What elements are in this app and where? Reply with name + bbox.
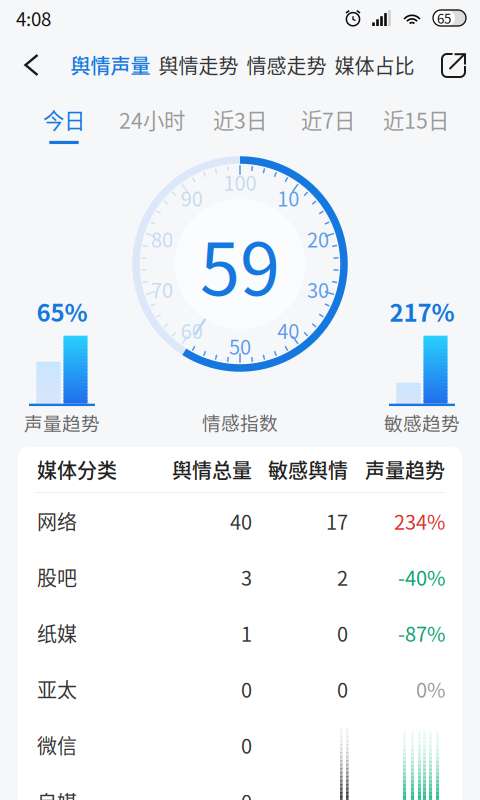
staticText: 30: [307, 275, 329, 304]
staticText: 0: [241, 730, 252, 759]
staticText: -40%: [398, 562, 445, 591]
staticText: 217%: [389, 294, 454, 329]
staticText: 股吧: [37, 562, 77, 591]
staticText: 亚太: [37, 674, 77, 703]
staticText: 50: [229, 331, 251, 360]
button[interactable]: 媒体占比: [334, 40, 414, 90]
staticText: 纸媒: [37, 618, 77, 647]
staticText: 90: [181, 183, 203, 212]
staticText: 舆情声量: [70, 50, 150, 79]
staticText: 自媒: [37, 786, 77, 800]
button[interactable]: 情感走势: [246, 40, 326, 90]
button[interactable]: 舆情声量: [70, 40, 150, 90]
staticText: 舆情总量: [172, 455, 252, 484]
staticText: 60: [181, 316, 203, 345]
staticText: 0: [241, 786, 252, 800]
button[interactable]: 舆情走势: [158, 40, 238, 90]
button[interactable]: 今日: [20, 94, 108, 150]
button[interactable]: 近15日: [372, 94, 460, 150]
staticText: 100: [223, 167, 256, 196]
staticText: 敏感趋势: [384, 409, 460, 436]
staticText: -87%: [398, 618, 445, 647]
staticText: 敏感舆情: [268, 455, 348, 484]
staticText: 0: [337, 674, 348, 703]
staticText: 2: [337, 562, 348, 591]
button[interactable]: 近3日: [196, 94, 284, 150]
staticText: 3: [241, 562, 252, 591]
staticText: 70: [151, 275, 173, 304]
staticText: 24小时: [119, 104, 185, 135]
staticText: 微信: [37, 730, 77, 759]
staticText: 舆情走势: [158, 50, 238, 79]
button[interactable]: 分享: [437, 40, 469, 90]
staticText: 1: [241, 618, 252, 647]
staticText: 媒体分类: [37, 455, 117, 484]
staticText: 近3日: [213, 104, 267, 135]
staticText: 17: [326, 506, 348, 535]
staticText: 10: [277, 183, 299, 212]
staticText: 0: [337, 618, 348, 647]
staticText: 媒体占比: [334, 50, 414, 79]
button[interactable]: 24小时: [108, 94, 196, 150]
staticText: 声量趋势: [24, 409, 100, 436]
staticText: 80: [151, 224, 173, 253]
staticText: 59: [200, 212, 280, 316]
staticText: 4:08: [16, 4, 51, 31]
staticText: 40: [277, 316, 299, 345]
staticText: 近7日: [301, 104, 355, 135]
staticText: 20: [307, 224, 329, 253]
staticText: 0: [241, 674, 252, 703]
button[interactable]: 近7日: [284, 94, 372, 150]
button[interactable]: 返回: [6, 40, 56, 90]
staticText: 近15日: [383, 104, 449, 135]
staticText: 网络: [37, 506, 77, 535]
staticText: 情感走势: [246, 50, 326, 79]
staticText: 40: [230, 506, 252, 535]
staticText: 65: [437, 8, 451, 28]
staticText: 0%: [416, 674, 445, 703]
staticText: 情感指数: [202, 408, 278, 435]
staticText: 声量趋势: [365, 455, 445, 484]
staticText: 234%: [394, 506, 445, 535]
staticText: 65%: [36, 294, 87, 329]
staticText: 今日: [43, 104, 85, 135]
